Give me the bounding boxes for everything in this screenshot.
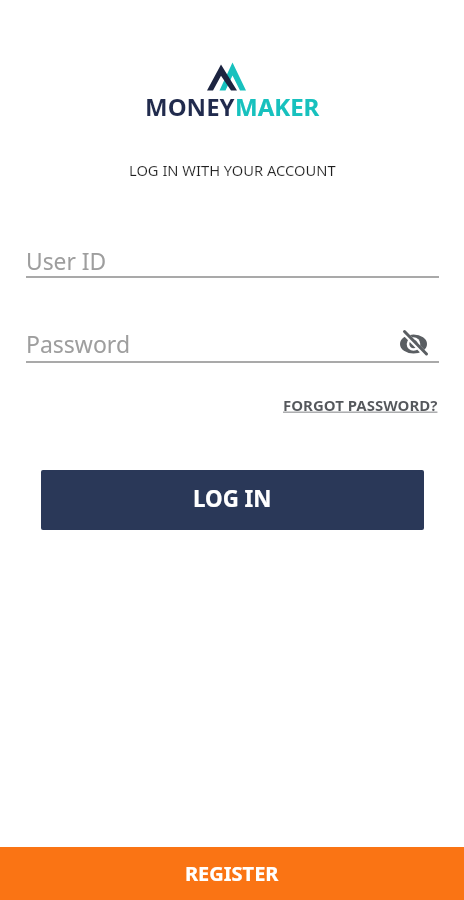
staticText: MONEY (145, 90, 235, 123)
button[interactable] (399, 329, 429, 359)
button[interactable]: FORGOT PASSWORD? (283, 395, 438, 415)
staticText: Password (26, 328, 131, 359)
staticText: LOG IN (193, 483, 272, 513)
staticText: LOG IN WITH YOUR ACCOUNT (129, 160, 336, 180)
button[interactable]: LOG IN (41, 470, 424, 530)
button[interactable]: User ID (26, 243, 439, 278)
staticText: User ID (26, 246, 107, 277)
staticText: REGISTER (185, 860, 279, 887)
button[interactable]: REGISTER (0, 847, 464, 900)
button[interactable]: Password (26, 327, 439, 363)
staticText: MAKER (235, 90, 320, 123)
